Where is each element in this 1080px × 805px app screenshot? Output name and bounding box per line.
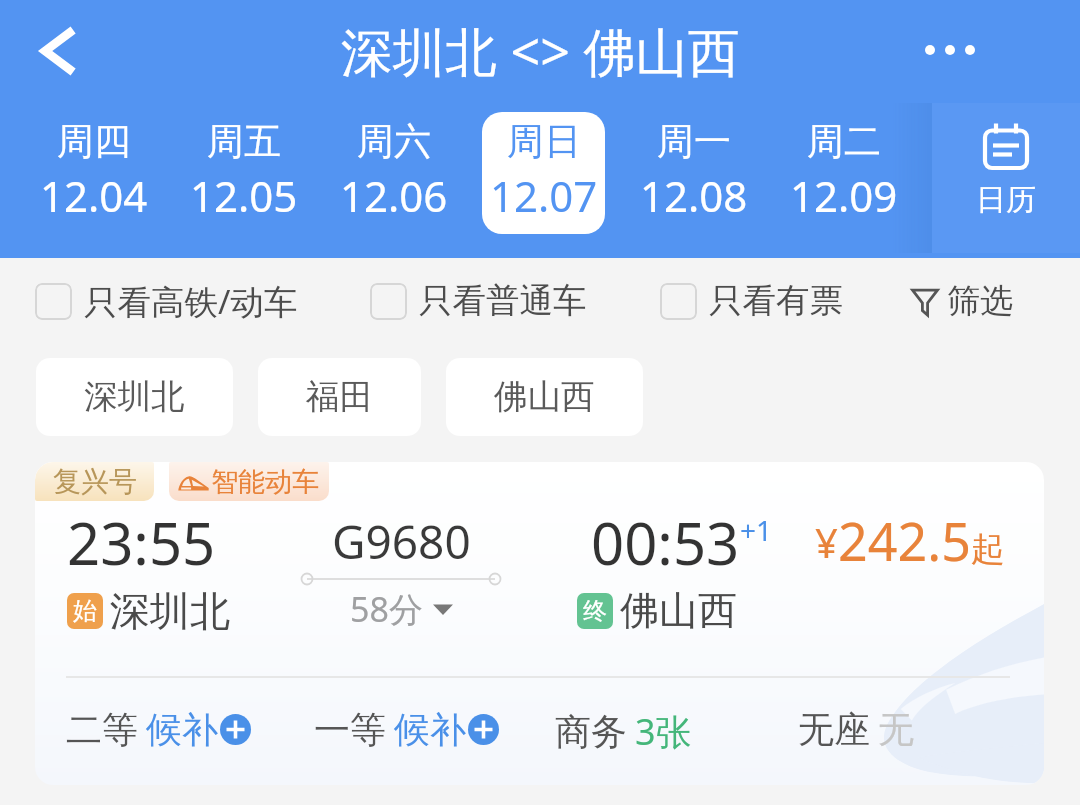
staticText: 12.06 [340,167,448,224]
staticText: 佛山西 [494,376,595,418]
staticText: 周日 [507,118,581,165]
staticText: 00:53 [591,503,740,582]
button[interactable]: More options [914,14,986,86]
staticText: 58分 [350,586,423,632]
staticText: 起 [971,528,1005,571]
button[interactable]: 福田 [258,358,421,436]
staticText: 12.08 [640,167,748,224]
staticText: 始 [73,596,97,626]
staticText: 只看有票 [709,280,843,322]
staticText: 无 [878,707,914,752]
staticText: 智能动车 [211,465,319,499]
staticText: 周四 [57,118,131,165]
staticText: 23:55 [67,503,216,582]
button[interactable]: 只看普通车 [370,280,587,322]
staticText: 二等 [66,707,138,752]
staticText: 候补 [394,707,466,752]
staticText: 只看普通车 [419,280,587,322]
staticText: 深圳北 [84,376,185,418]
staticText: 候补 [146,707,218,752]
staticText: 12.09 [790,167,898,224]
staticText: 周六 [357,118,431,165]
staticText: ¥ [815,515,838,569]
staticText: 3张 [635,707,692,756]
staticText: 无座 [798,707,870,752]
staticText: 一等 [314,707,386,752]
button[interactable]: 周六 [318,98,468,248]
button[interactable]: 周五 [168,98,318,248]
staticText: 福田 [306,376,373,418]
staticText: 商务 [555,709,627,754]
button[interactable]: 只看有票 [660,280,843,322]
button[interactable]: 商务 [555,707,692,756]
staticText: 周五 [207,118,281,165]
staticText: +1 [740,511,773,549]
staticText: 深圳北 [110,586,230,636]
staticText: 12.04 [40,167,148,224]
staticText: 佛山西 [620,586,737,635]
button[interactable]: 只看高铁/动车 [35,278,298,324]
button[interactable]: 周一 [618,98,768,248]
button[interactable]: 佛山西 [446,358,643,436]
button[interactable]: 复兴号 [35,462,1044,785]
staticText: 终 [583,596,607,626]
button[interactable]: 周四 [18,98,168,248]
staticText: 周一 [657,118,731,165]
button[interactable]: 二等 [66,707,251,752]
staticText: 深圳北 <> 佛山西 [341,15,740,86]
button[interactable]: 深圳北 [36,358,233,436]
staticText: 只看高铁/动车 [84,278,298,324]
button[interactable]: 一等 [314,707,499,752]
button[interactable]: Calendar [932,103,1080,253]
staticText: 12.07 [490,167,598,224]
staticText: 日历 [976,181,1036,219]
button[interactable]: 周二 [768,98,918,248]
button[interactable]: Back [22,15,94,87]
staticText: 筛选 [947,280,1013,322]
staticText: 复兴号 [53,464,137,499]
staticText: 12.05 [190,167,298,224]
button[interactable]: 周日 [468,98,618,248]
button[interactable]: 筛选 [912,280,1013,322]
staticText: G9680 [332,510,471,573]
button[interactable]: 无座 [798,707,914,752]
staticText: 242.5 [838,505,971,576]
staticText: 周二 [807,118,881,165]
